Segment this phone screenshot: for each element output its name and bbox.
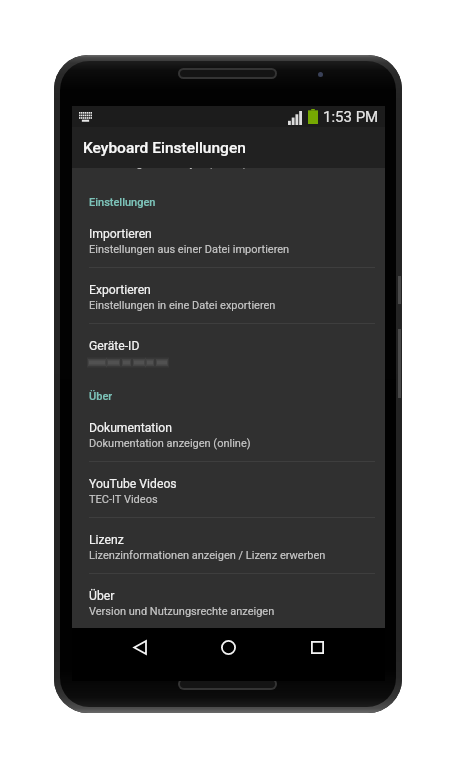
staticText: Lizenz — [89, 533, 124, 547]
staticText: Einstellungen von Layout, Farbe, Tasten — [89, 168, 281, 170]
button[interactable]: Exportieren — [72, 268, 385, 324]
button[interactable]: Geräte-ID — [72, 324, 385, 380]
button[interactable]: Dokumentation — [72, 406, 385, 462]
staticText: Exportieren — [89, 283, 151, 297]
button[interactable]: Back — [112, 628, 168, 666]
staticText: Dokumentation — [89, 421, 172, 435]
staticText: Dokumentation anzeigen (online) — [89, 437, 251, 450]
button[interactable]: Home — [200, 628, 256, 666]
staticText: Version und Nutzungsrechte anzeigen — [89, 605, 275, 618]
staticText: YouTube Videos — [89, 477, 177, 491]
staticText: Einstellungen in eine Datei exportieren — [89, 299, 276, 312]
staticText: Keyboard Einstellungen — [83, 139, 246, 157]
staticText: Einstellungen — [89, 196, 156, 209]
button[interactable]: Über — [72, 574, 385, 627]
staticText: 1:53 PM — [323, 108, 379, 126]
staticText: TEC-IT Videos — [89, 493, 158, 506]
button[interactable]: Recent apps — [289, 628, 345, 666]
button[interactable]: Lizenz — [72, 518, 385, 574]
staticText: Geräte-ID — [89, 339, 140, 353]
staticText: Über — [89, 390, 113, 403]
staticText: Lizenzinformationen anzeigen / Lizenz er… — [89, 549, 326, 562]
staticText: Einstellungen aus einer Datei importiere… — [89, 243, 290, 256]
button[interactable]: YouTube Videos — [72, 462, 385, 518]
staticText: Über — [89, 589, 115, 603]
staticText: Importieren — [89, 227, 152, 241]
button[interactable]: Stil — [72, 168, 385, 182]
button[interactable]: Importieren — [72, 212, 385, 268]
